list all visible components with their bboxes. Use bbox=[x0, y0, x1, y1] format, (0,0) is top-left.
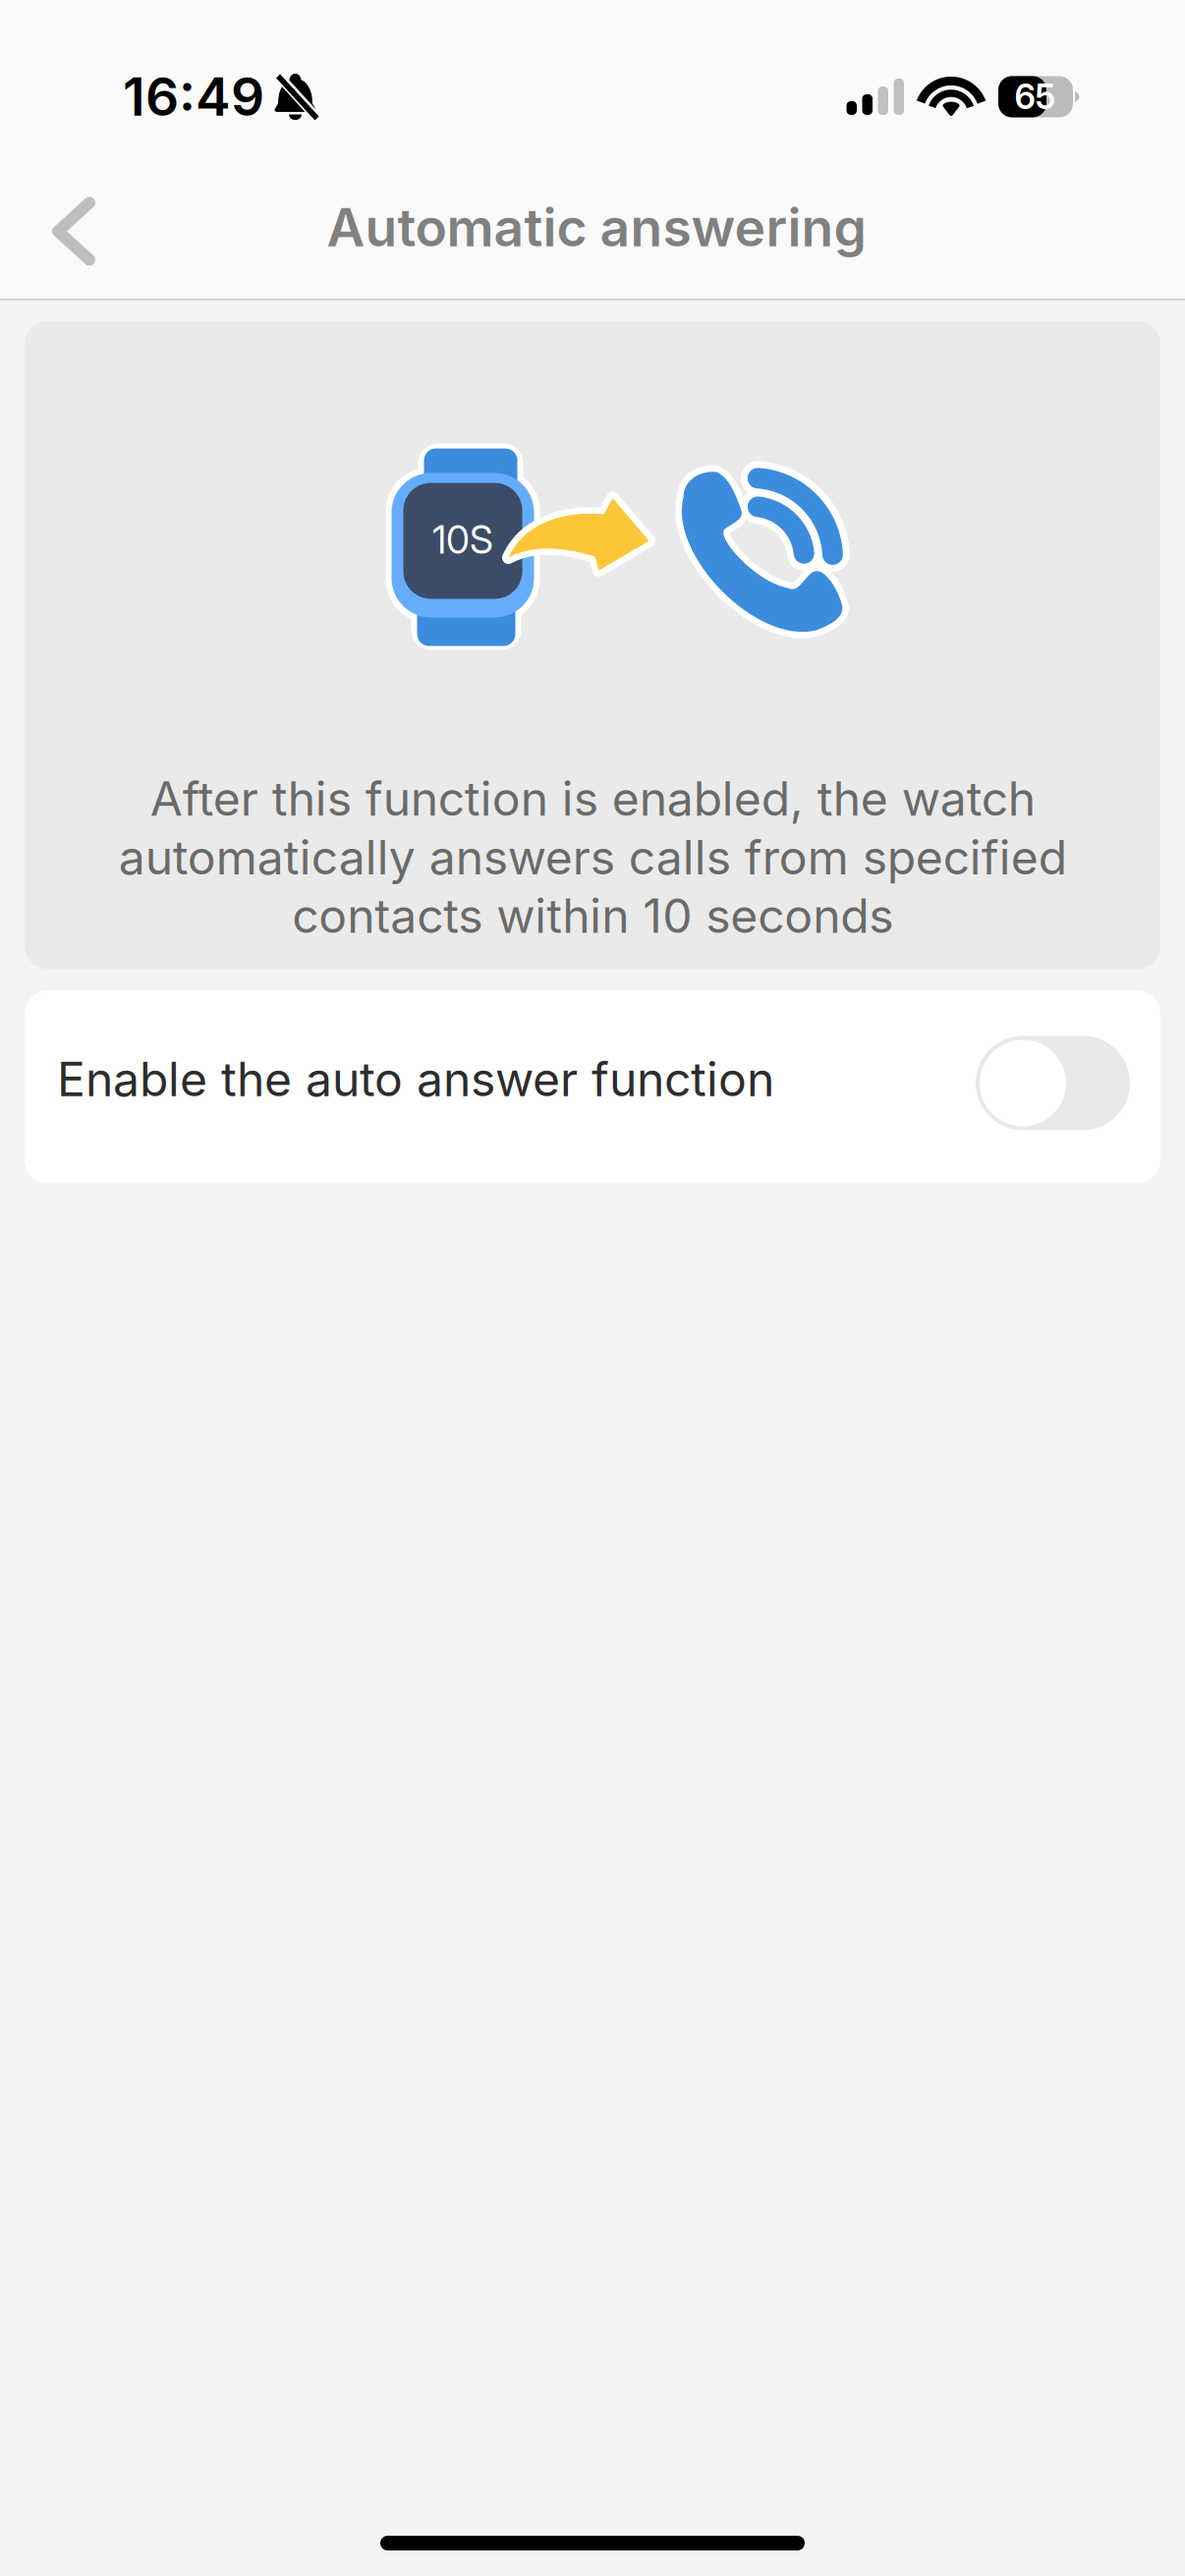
staticText: Automatic answering bbox=[327, 196, 866, 258]
staticText: Enable the auto answer function bbox=[57, 1051, 774, 1107]
staticText: After this function is enabled, the watc… bbox=[118, 771, 1067, 944]
button[interactable]: Enable the auto answer function bbox=[25, 991, 1160, 1183]
staticText: 65 bbox=[1015, 77, 1056, 117]
button[interactable]: Back bbox=[15, 166, 133, 289]
staticText: 16:49 bbox=[123, 66, 264, 128]
staticText: 10S bbox=[432, 517, 493, 562]
